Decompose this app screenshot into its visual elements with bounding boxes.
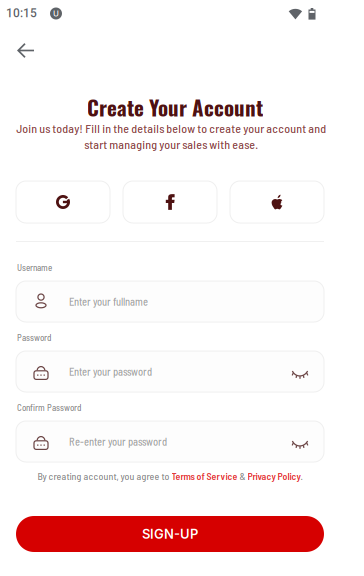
staticText: SIGN-UP — [142, 526, 198, 542]
staticText: & — [237, 470, 247, 482]
staticText: . — [300, 470, 302, 482]
button[interactable]: Sign up with Apple — [230, 181, 324, 223]
staticText: Confirm Password — [17, 402, 81, 413]
button[interactable]: Privacy Policy — [247, 470, 300, 482]
staticText: Join us today! Fill in the details below… — [16, 121, 326, 151]
button[interactable]: Enter your password — [16, 351, 324, 392]
staticText: Re-enter your password — [69, 435, 167, 448]
staticText: By creating account, you agree to — [37, 470, 171, 482]
staticText: Privacy Policy — [247, 470, 300, 482]
staticText: Enter your password — [69, 365, 152, 378]
staticText: 10:15 — [6, 6, 37, 20]
button[interactable]: Re-enter your password — [16, 421, 324, 462]
button[interactable]: Sign up with Google — [16, 181, 110, 223]
staticText: Terms of Service — [171, 470, 237, 482]
button[interactable]: Enter your fullname — [16, 281, 324, 322]
button[interactable]: SIGN-UP — [16, 516, 324, 552]
button[interactable]: Back — [8, 32, 44, 68]
staticText: Enter your fullname — [69, 295, 148, 308]
button[interactable]: Terms of Service — [171, 470, 237, 482]
staticText: U — [53, 9, 59, 18]
staticText: Password — [17, 332, 51, 343]
button[interactable]: Sign up with Facebook — [123, 181, 217, 223]
staticText: Create Your Account — [87, 91, 263, 123]
staticText: Username — [17, 262, 52, 273]
